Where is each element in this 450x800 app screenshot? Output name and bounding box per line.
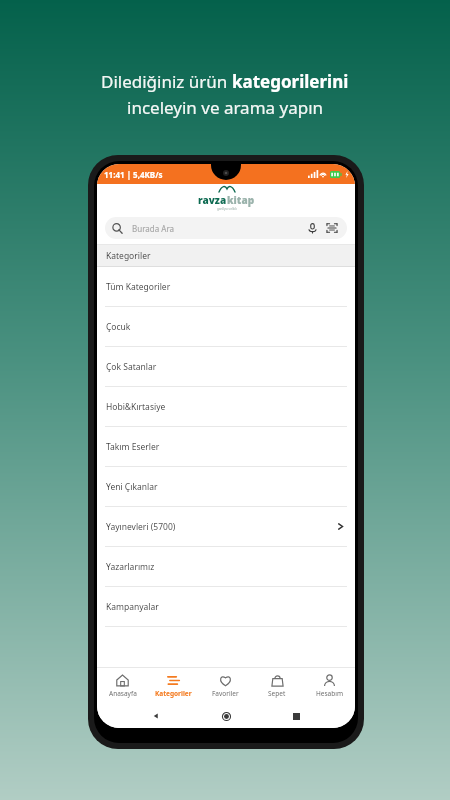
button[interactable]: Tüm Kategoriler <box>97 267 355 306</box>
button[interactable]: Geri <box>145 705 167 727</box>
button[interactable]: Ana ekran <box>215 705 237 727</box>
button[interactable]: Hesabım <box>303 674 355 698</box>
button[interactable]: Çok Satanlar <box>97 347 355 386</box>
button[interactable]: Burada Ara <box>105 217 347 239</box>
staticText: Sepet <box>268 689 286 698</box>
button[interactable]: Favoriler <box>199 674 251 698</box>
button[interactable]: Çocuk <box>97 307 355 346</box>
button[interactable]: Kategoriler <box>148 674 199 698</box>
staticText: Yayınevleri (5700) <box>106 521 176 533</box>
staticText: Yeni Çıkanlar <box>106 481 158 493</box>
staticText: Yazarlarımız <box>106 561 155 573</box>
staticText: 11:41 | 5,4KB/s <box>104 169 163 180</box>
staticText: Tüm Kategoriler <box>106 281 171 293</box>
button[interactable]: Son uygulamalar <box>285 705 307 727</box>
staticText: kitap <box>227 193 255 207</box>
button[interactable]: Anasayfa <box>97 674 148 698</box>
staticText: Çok Satanlar <box>106 361 157 373</box>
staticText: Anasayfa <box>109 689 137 698</box>
button[interactable]: Hobi&Kırtasiye <box>97 387 355 426</box>
staticText: Favoriler <box>212 689 239 698</box>
staticText: Takım Eserler <box>106 441 160 453</box>
button[interactable]: Yeni Çıkanlar <box>97 467 355 506</box>
staticText: kategorilerini <box>232 70 349 93</box>
staticText: Burada Ara <box>132 223 175 234</box>
staticText: inceleyin ve arama yapın <box>127 96 324 119</box>
button[interactable]: Barkod tara <box>323 219 341 237</box>
staticText: Hobi&Kırtasiye <box>106 401 166 413</box>
staticText: Kategoriler <box>106 250 151 262</box>
staticText: Hesabım <box>316 689 343 698</box>
staticText: ganllysı sırlıklı <box>217 207 237 211</box>
button[interactable]: Kampanyalar <box>97 587 355 626</box>
button[interactable]: Takım Eserler <box>97 427 355 466</box>
staticText: Çocuk <box>106 321 131 333</box>
button[interactable]: Sesli arama <box>303 219 321 237</box>
staticText: Dilediğiniz ürün <box>101 70 232 93</box>
button[interactable]: Sepet <box>251 674 303 698</box>
button[interactable]: Yazarlarımız <box>97 547 355 586</box>
staticText: Kampanyalar <box>106 601 159 613</box>
staticText: ravza <box>198 193 227 207</box>
staticText: Kategoriler <box>155 689 192 698</box>
button[interactable]: Yayınevleri (5700) <box>97 507 355 546</box>
